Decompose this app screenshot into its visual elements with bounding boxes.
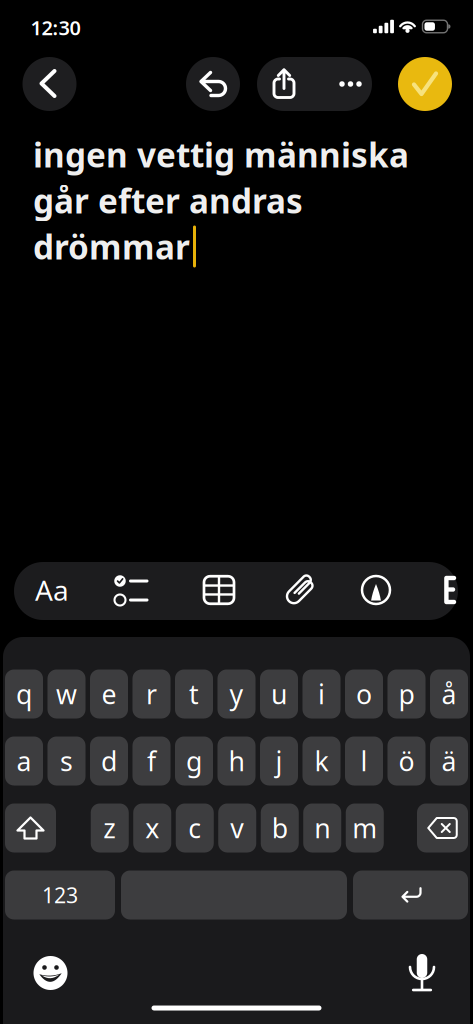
button[interactable]: ö [387, 736, 425, 785]
button[interactable]: Done [398, 57, 452, 111]
staticText: i [318, 676, 325, 712]
button[interactable]: x [133, 803, 171, 852]
button[interactable]: Attach [274, 561, 330, 619]
button[interactable]: v [218, 803, 256, 852]
staticText: y [229, 676, 243, 712]
staticText: x [145, 810, 159, 846]
button[interactable]: Format [22, 561, 82, 619]
button[interactable]: p [387, 669, 425, 718]
button[interactable]: k [302, 736, 340, 785]
staticText: l [360, 743, 367, 779]
staticText: f [147, 743, 156, 779]
button[interactable]: More [328, 57, 372, 111]
staticText: z [103, 810, 116, 846]
button[interactable]: Bold [442, 561, 457, 619]
staticText: h [228, 743, 244, 779]
button[interactable]: å [430, 669, 468, 718]
button[interactable]: o [345, 669, 383, 718]
button[interactable]: s [47, 736, 85, 785]
button[interactable]: t [175, 669, 213, 718]
button[interactable]: Markup [348, 561, 404, 619]
button[interactable]: z [91, 803, 129, 852]
staticText: w [56, 676, 77, 712]
staticText: Aa [35, 571, 69, 609]
staticText: å [441, 676, 456, 712]
button[interactable]: Undo [186, 57, 240, 111]
button[interactable]: Checklist [103, 561, 159, 619]
staticText: q [16, 676, 32, 712]
staticText: s [60, 743, 73, 779]
button[interactable]: Return [353, 870, 468, 919]
button[interactable]: ä [430, 736, 468, 785]
button[interactable]: q [5, 669, 43, 718]
staticText: v [230, 810, 244, 846]
button[interactable]: Delete [417, 803, 468, 852]
button[interactable]: w [47, 669, 85, 718]
staticText: b [272, 810, 288, 846]
staticText: k [314, 743, 328, 779]
button[interactable]: r [132, 669, 170, 718]
button[interactable]: n [303, 803, 341, 852]
button[interactable]: b [261, 803, 299, 852]
button[interactable]: Share [262, 57, 306, 111]
button[interactable]: m [346, 803, 384, 852]
button[interactable]: y [217, 669, 255, 718]
button[interactable]: l [345, 736, 383, 785]
button[interactable]: d [90, 736, 128, 785]
button[interactable]: Emoji [28, 951, 72, 995]
button[interactable]: g [175, 736, 213, 785]
staticText: ä [441, 743, 456, 779]
staticText: p [398, 676, 414, 712]
staticText: a [16, 743, 31, 779]
staticText: o [356, 676, 372, 712]
staticText: m [352, 810, 377, 846]
button[interactable]: a [5, 736, 43, 785]
staticText: n [314, 810, 330, 846]
button[interactable]: i [302, 669, 340, 718]
button[interactable]: j [260, 736, 298, 785]
button[interactable]: c [176, 803, 214, 852]
button[interactable]: Dictate [400, 950, 444, 994]
staticText: ingen vettig människa [33, 132, 409, 177]
staticText: r [146, 676, 157, 712]
staticText: går efter andras [33, 178, 303, 223]
button[interactable]: Back [22, 57, 76, 111]
staticText: ö [398, 743, 414, 779]
staticText: t [189, 676, 199, 712]
button[interactable]: Space [121, 870, 347, 919]
button[interactable]: u [260, 669, 298, 718]
staticText: 12:30 [30, 14, 80, 41]
button[interactable]: 123 [5, 870, 115, 919]
staticText: 123 [42, 881, 78, 909]
staticText: c [188, 810, 201, 846]
staticText: g [186, 743, 202, 779]
staticText: j [275, 743, 282, 779]
staticText: drömmar [33, 224, 190, 269]
staticText: e [101, 676, 116, 712]
staticText: d [101, 743, 117, 779]
button[interactable]: e [90, 669, 128, 718]
button[interactable]: Table [191, 561, 247, 619]
button[interactable]: f [132, 736, 170, 785]
button[interactable]: Shift [5, 803, 56, 852]
button[interactable]: h [217, 736, 255, 785]
staticText: u [271, 676, 287, 712]
